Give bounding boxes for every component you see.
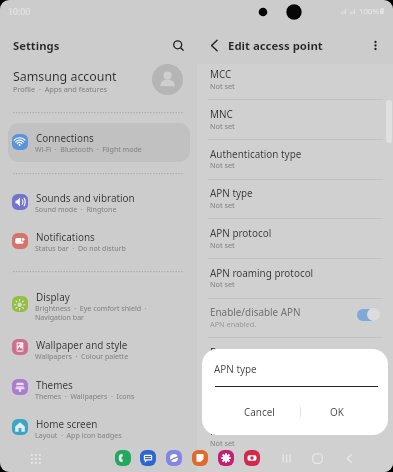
staticText: Themes · Wallpapers · Icons	[35, 391, 135, 401]
staticText: MNC	[210, 107, 233, 120]
button[interactable]	[197, 339, 393, 379]
staticText: Not set	[210, 240, 235, 250]
button[interactable]: Home	[306, 447, 328, 469]
staticText: MCC	[210, 67, 232, 80]
button[interactable]: App 1	[115, 450, 131, 466]
staticText: APN enabled.	[210, 319, 257, 329]
staticText: Not set	[210, 160, 235, 170]
button[interactable]: Navigate up	[201, 32, 228, 59]
button[interactable]	[197, 259, 393, 299]
button[interactable]	[197, 418, 393, 458]
staticText: Notifications	[36, 230, 95, 243]
staticText: MVNO value	[210, 424, 268, 437]
staticText: Not set	[210, 279, 235, 289]
staticText: Samsung account	[13, 68, 117, 85]
staticText: Home screen	[36, 417, 98, 430]
staticText: APN protocol	[210, 226, 272, 239]
staticText: Wallpapers · Colour palette	[35, 351, 129, 361]
staticText: Authentication type	[210, 147, 302, 160]
button[interactable]: Apps	[24, 447, 46, 469]
button[interactable]	[8, 408, 190, 446]
button[interactable]: App 2	[140, 450, 156, 466]
staticText: Display	[36, 290, 70, 303]
staticText: 100%	[359, 6, 379, 17]
button[interactable]: Search	[162, 31, 189, 58]
button[interactable]	[197, 100, 393, 140]
staticText: Settings	[13, 38, 60, 53]
button[interactable]: App 4	[192, 450, 208, 466]
button[interactable]	[197, 378, 393, 418]
staticText: Not set	[210, 438, 235, 448]
button[interactable]	[197, 180, 393, 220]
button[interactable]: App 5	[218, 450, 234, 466]
staticText: Sound mode · Ringtone	[35, 204, 117, 214]
staticText: Navigation bar	[35, 312, 85, 322]
button[interactable]: Cancel	[212, 398, 306, 425]
button[interactable]	[8, 368, 190, 406]
button[interactable]	[8, 183, 190, 221]
staticText: APN type	[214, 362, 257, 375]
staticText: Not set	[210, 200, 235, 210]
staticText: Wi-Fi · Bluetooth · Flight mode	[35, 144, 142, 154]
button[interactable]: App 6	[244, 450, 260, 466]
button[interactable]: More options	[362, 32, 389, 59]
staticText: APN type	[210, 186, 253, 199]
button[interactable]	[8, 328, 190, 366]
staticText: Enable/disable APN	[210, 305, 301, 318]
button[interactable]: App 3	[166, 450, 182, 466]
staticText: Not set	[210, 81, 235, 91]
staticText: 10:00	[8, 6, 31, 18]
button[interactable]: Back	[338, 447, 360, 469]
button[interactable]: Recent apps	[275, 447, 297, 469]
staticText: Layout · App icon badges	[35, 430, 122, 440]
staticText: Edit access point	[228, 38, 323, 54]
staticText: Not set	[210, 121, 235, 131]
staticText: Bearer	[210, 345, 242, 358]
staticText: Cancel	[244, 405, 275, 418]
staticText: Sounds and vibration	[36, 191, 135, 204]
staticText: Wallpaper and style	[36, 338, 128, 351]
button[interactable]	[8, 285, 190, 323]
staticText: Themes	[36, 378, 73, 391]
button[interactable]	[197, 219, 393, 259]
staticText: Not set	[210, 359, 235, 369]
staticText: Status bar · Do not disturb	[35, 243, 126, 253]
button[interactable]	[8, 222, 190, 260]
button[interactable]	[6, 63, 190, 99]
staticText: APN roaming protocol	[210, 266, 314, 279]
button[interactable]	[197, 140, 393, 180]
button[interactable]	[197, 61, 393, 101]
button[interactable]	[197, 299, 393, 339]
button[interactable]: OK	[302, 398, 372, 425]
staticText: MVNO type	[210, 385, 263, 398]
staticText: Brightness · Eye comfort shield ·	[35, 303, 147, 313]
button[interactable]	[8, 123, 190, 161]
staticText: Connections	[36, 131, 94, 144]
staticText: Profile · Apps and features	[13, 84, 107, 94]
staticText: OK	[330, 405, 344, 418]
